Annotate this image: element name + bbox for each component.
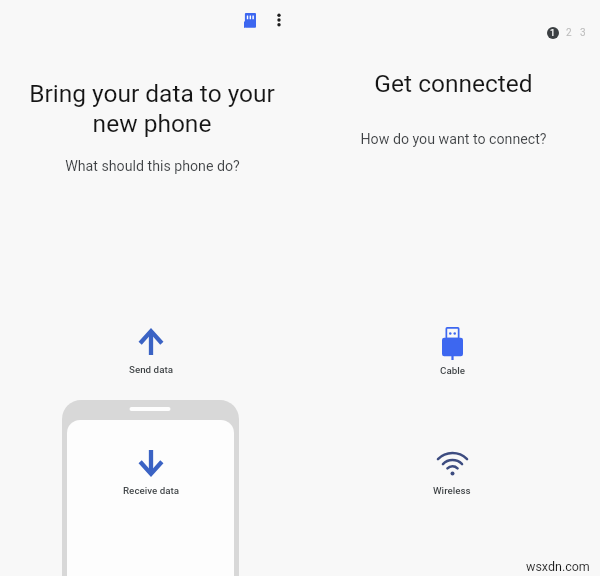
button[interactable]: Send data: [110, 329, 192, 375]
staticText: What should this phone do?: [65, 158, 240, 175]
button[interactable]: More options: [267, 8, 291, 32]
button[interactable]: Cable: [411, 327, 493, 376]
staticText: How do you want to connect?: [360, 131, 547, 148]
button[interactable]: Receive data: [110, 450, 192, 496]
button[interactable]: Wireless: [411, 452, 493, 496]
staticText: wsxdn.com: [526, 559, 590, 574]
staticText: 2: [566, 27, 572, 39]
button[interactable]: Step 1 of 3: [547, 27, 586, 39]
staticText: Wireless: [433, 485, 471, 496]
staticText: Send data: [129, 364, 174, 375]
staticText: 3: [580, 27, 586, 39]
staticText: Cable: [440, 365, 465, 376]
staticText: Receive data: [123, 485, 180, 496]
staticText: Bring your data to your new phone: [29, 79, 275, 138]
staticText: 1: [550, 28, 556, 39]
button[interactable]: SD card: [238, 8, 262, 32]
staticText: Get connected: [374, 69, 533, 98]
